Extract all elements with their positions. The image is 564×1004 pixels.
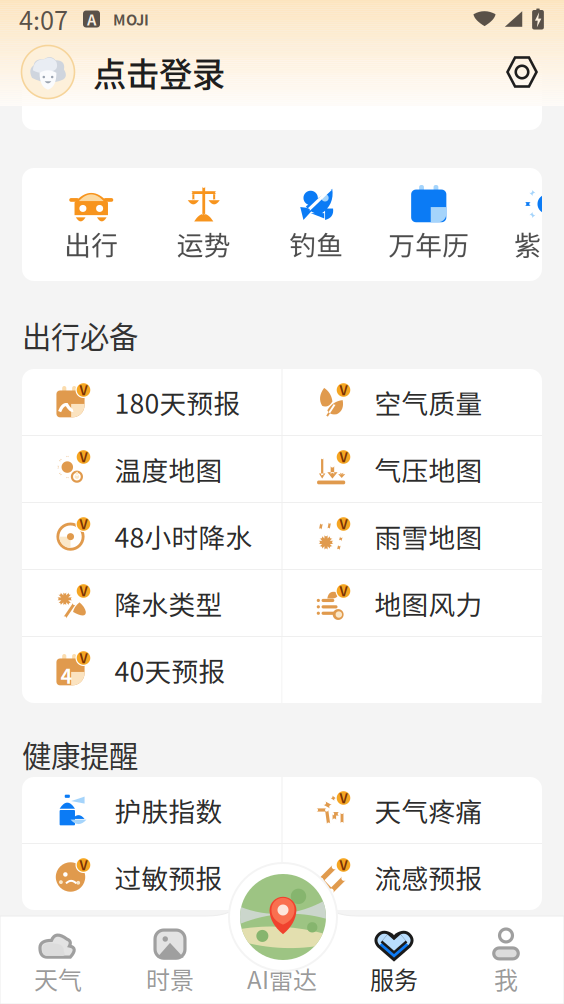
staticText: 4:07 — [19, 1, 68, 37]
staticText: 万年历 — [388, 224, 469, 263]
staticText: V — [339, 788, 347, 807]
staticText: 温度地图 — [114, 450, 222, 488]
button[interactable]: 快捷功能 — [485, 168, 564, 281]
staticText: AI雷达 — [247, 961, 317, 996]
staticText: 降水类型 — [114, 584, 222, 622]
staticText: V — [339, 514, 347, 533]
button[interactable]: 护肤指数 — [22, 777, 281, 843]
staticText: V — [79, 514, 87, 533]
staticText: V — [79, 581, 87, 600]
staticText: 天气疼痛 — [374, 791, 482, 829]
staticText: V — [339, 447, 347, 466]
button[interactable]: 快捷功能 — [260, 168, 372, 281]
button[interactable]: 天气 — [2, 916, 114, 1004]
button[interactable]: AI雷达 — [228, 862, 338, 972]
staticText: A — [87, 8, 96, 30]
staticText: V — [339, 581, 347, 600]
staticText: 时景 — [146, 961, 194, 996]
button[interactable]: 点击登录 — [75, 45, 225, 99]
button[interactable]: V — [22, 570, 281, 636]
staticText: 40天预报 — [114, 651, 225, 689]
button[interactable]: V — [22, 436, 281, 502]
staticText: 雨雪地图 — [374, 517, 482, 555]
staticText: 180天预报 — [114, 383, 240, 421]
button[interactable]: 我 — [450, 916, 562, 1004]
staticText: 出行 — [64, 224, 118, 263]
staticText: 48小时降水 — [114, 517, 252, 555]
button[interactable]: V — [22, 503, 281, 569]
staticText: V — [339, 855, 347, 874]
staticText: 出行必备 — [22, 314, 138, 356]
button[interactable]: V — [22, 369, 281, 435]
staticText: MOJI — [113, 8, 149, 30]
staticText: V — [79, 447, 87, 466]
staticText: 4 — [60, 660, 72, 689]
staticText: 流感预报 — [374, 858, 482, 896]
button[interactable]: AI雷达 — [226, 916, 338, 1004]
staticText: 服务 — [370, 961, 418, 996]
staticText: 健康提醒 — [22, 733, 138, 775]
button[interactable]: V — [282, 570, 541, 636]
button[interactable]: 4 — [22, 637, 281, 703]
staticText: 紫外 — [514, 224, 564, 263]
button[interactable]: 服务 — [338, 916, 450, 1004]
staticText: 天气 — [34, 961, 82, 996]
button[interactable]: V — [282, 436, 541, 502]
button[interactable]: V — [282, 844, 541, 910]
button[interactable]: 快捷功能 — [147, 168, 260, 281]
staticText: V — [79, 855, 87, 874]
button[interactable]: 快捷功能 — [372, 168, 485, 281]
button[interactable]: 头像 — [21, 45, 75, 99]
staticText: V — [79, 648, 87, 667]
staticText: 钓鱼 — [289, 224, 343, 263]
staticText: 过敏预报 — [114, 858, 222, 896]
staticText: V — [79, 380, 87, 399]
staticText: 气压地图 — [374, 450, 482, 488]
button[interactable]: V — [282, 503, 541, 569]
button[interactable]: V — [282, 777, 541, 843]
staticText: 地图风力 — [374, 584, 482, 622]
staticText: 护肤指数 — [114, 791, 222, 829]
button[interactable]: 时景 — [114, 916, 226, 1004]
button[interactable]: V — [282, 369, 541, 435]
button[interactable]: 快捷功能 — [35, 168, 147, 281]
staticText: 运势 — [177, 224, 231, 263]
staticText: 点击登录 — [93, 48, 225, 96]
staticText: 我 — [494, 961, 518, 996]
button[interactable]: V — [22, 844, 281, 910]
staticText: V — [339, 380, 347, 399]
button[interactable]: 设置 — [503, 53, 541, 91]
staticText: 空气质量 — [374, 383, 482, 421]
